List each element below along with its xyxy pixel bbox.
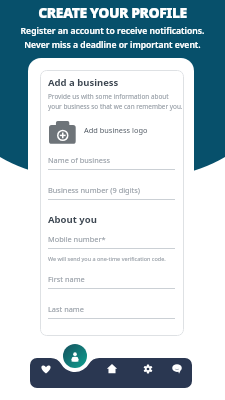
staticText: Business number (9 digits) [48,185,140,195]
button[interactable] [49,121,145,144]
staticText: Last name [48,304,84,314]
staticText: We will send you a one-time verification… [48,255,166,262]
staticText: Add a business [48,76,119,89]
button[interactable]: Last name [48,304,175,318]
staticText: Provide us with some information about [48,92,169,101]
staticText: First name [48,274,85,284]
staticText: Register an account to receive notificat… [0,25,225,37]
button[interactable]: Profile [63,344,87,368]
staticText: Add business logo [84,125,148,135]
staticText: your business so that we can remember yo… [48,102,183,111]
button[interactable]: Name of business [48,155,175,169]
staticText: About you [48,213,97,226]
button[interactable]: First name [48,274,175,288]
staticText: Mobile number* [48,234,106,244]
button[interactable]: Settings [136,357,160,381]
button[interactable]: Business number (9 digits) [48,185,175,199]
button[interactable]: Mobile number* [48,234,175,248]
staticText: Never miss a deadline or important event… [0,39,225,51]
button[interactable]: Messages [165,357,189,381]
button[interactable]: Home [100,357,124,381]
staticText: CREATE YOUR PROFILE [0,3,225,22]
button[interactable]: Favourites [34,357,58,381]
staticText: Name of business [48,155,111,165]
